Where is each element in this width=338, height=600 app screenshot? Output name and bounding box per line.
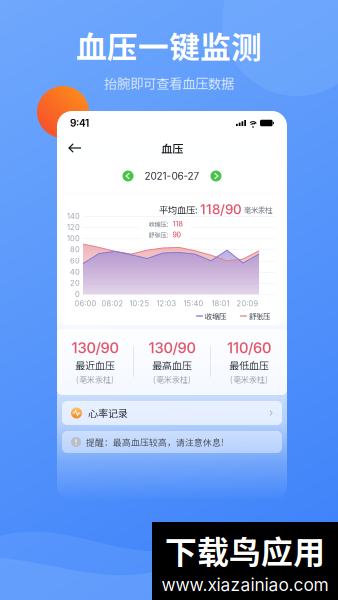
- staticText: 90: [172, 231, 180, 239]
- staticText: 下载鸟应用: [165, 527, 325, 573]
- staticText: 最低血压: [229, 358, 269, 372]
- staticText: 收缩压:: [148, 220, 168, 228]
- staticText: 100: [67, 234, 80, 243]
- staticText: (毫米汞柱): [76, 373, 114, 385]
- staticText: 118: [172, 220, 182, 228]
- button[interactable]: 返回: [64, 137, 86, 159]
- button[interactable]: 2021-06-27: [62, 161, 282, 191]
- staticText: 收缩压: [205, 311, 226, 321]
- staticText: 2021-06-27: [144, 170, 199, 182]
- staticText: 130/90: [72, 339, 119, 357]
- staticText: 06:00: [74, 299, 96, 308]
- staticText: 110/60: [227, 339, 271, 357]
- staticText: 抬腕即可查看血压数据: [104, 73, 234, 93]
- staticText: 舒张压:: [148, 230, 168, 239]
- staticText: 20: [70, 279, 80, 288]
- staticText: 08:02: [101, 299, 123, 308]
- staticText: 12:03: [156, 299, 176, 308]
- staticText: 118/90: [200, 201, 242, 217]
- staticText: www.xiazainiao.com: [161, 574, 328, 595]
- staticText: (毫米汞柱): [153, 373, 191, 385]
- staticText: 心率记录: [88, 406, 128, 420]
- staticText: 血压一键监测: [76, 23, 262, 67]
- staticText: 最近血压: [75, 358, 115, 372]
- staticText: 18:01: [211, 299, 229, 308]
- staticText: (毫米汞柱): [230, 373, 268, 385]
- staticText: 0: [75, 290, 80, 299]
- staticText: 130/90: [148, 339, 195, 357]
- button[interactable]: 心率记录: [62, 401, 282, 425]
- staticText: 120: [67, 223, 80, 232]
- staticText: 20:09: [236, 299, 258, 308]
- staticText: 提醒：最高血压较高，请注意休息!: [86, 436, 224, 448]
- staticText: 9:41: [70, 117, 89, 129]
- staticText: 140: [67, 212, 80, 221]
- staticText: 15:40: [183, 299, 203, 308]
- staticText: 舒张压: [249, 311, 270, 321]
- staticText: 60: [70, 256, 80, 265]
- staticText: 毫米汞柱: [244, 204, 272, 215]
- staticText: 血压: [161, 140, 183, 156]
- staticText: 10:25: [129, 299, 149, 308]
- staticText: 最高血压: [152, 358, 192, 372]
- staticText: 40: [70, 267, 80, 276]
- staticText: 80: [70, 245, 80, 254]
- staticText: 平均血压:: [159, 203, 198, 216]
